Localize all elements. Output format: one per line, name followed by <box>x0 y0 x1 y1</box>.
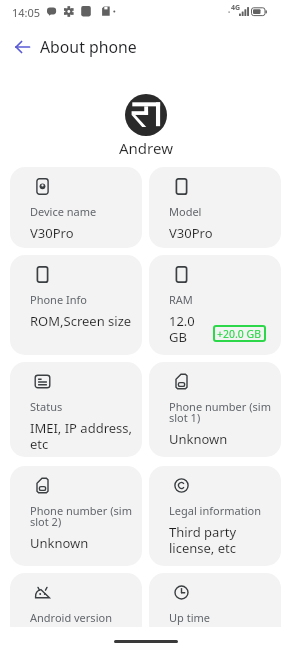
staticText: Third party license, etc <box>169 523 277 556</box>
button[interactable]: Android version <box>10 573 142 650</box>
staticText: 12.0 GB <box>169 312 195 345</box>
staticText: 14:05 <box>12 5 41 20</box>
staticText: IMEI, IP address, etc <box>30 419 138 452</box>
staticText: RAM <box>169 292 193 307</box>
button[interactable]: Phone Info <box>10 255 142 355</box>
button[interactable]: Phone number (sim slot 1) <box>149 362 281 457</box>
staticText: Phone Info <box>30 292 87 307</box>
staticText: Model <box>169 204 202 219</box>
staticText: Unknown <box>169 430 228 448</box>
staticText: V30Pro <box>30 224 74 242</box>
button[interactable]: Model <box>149 167 281 248</box>
button[interactable]: RAM <box>149 255 281 355</box>
staticText: Up time <box>169 610 210 625</box>
staticText: Unknown <box>30 534 89 552</box>
button[interactable]: Profile picture <box>125 94 167 136</box>
staticText: Status <box>30 399 63 414</box>
staticText: Phone number (sim slot 1) <box>169 399 274 425</box>
button[interactable]: Device name <box>10 167 142 248</box>
button[interactable]: Phone number (sim slot 2) <box>10 466 142 566</box>
staticText: Andrew <box>119 138 173 158</box>
button[interactable]: Legal information <box>149 466 281 566</box>
staticText: About phone <box>40 36 137 58</box>
button[interactable]: Back <box>8 32 36 60</box>
button[interactable]: Status <box>10 362 142 457</box>
staticText: 4G <box>231 3 241 13</box>
staticText: +20.0 GB <box>217 327 262 341</box>
staticText: V30Pro <box>169 224 213 242</box>
staticText: ROM,Screen size <box>30 312 132 330</box>
staticText: Android version <box>30 610 112 625</box>
button[interactable]: Up time <box>149 573 281 650</box>
staticText: Legal information <box>169 503 261 518</box>
staticText: Phone number (sim slot 2) <box>30 503 135 529</box>
staticText: Device name <box>30 204 97 219</box>
